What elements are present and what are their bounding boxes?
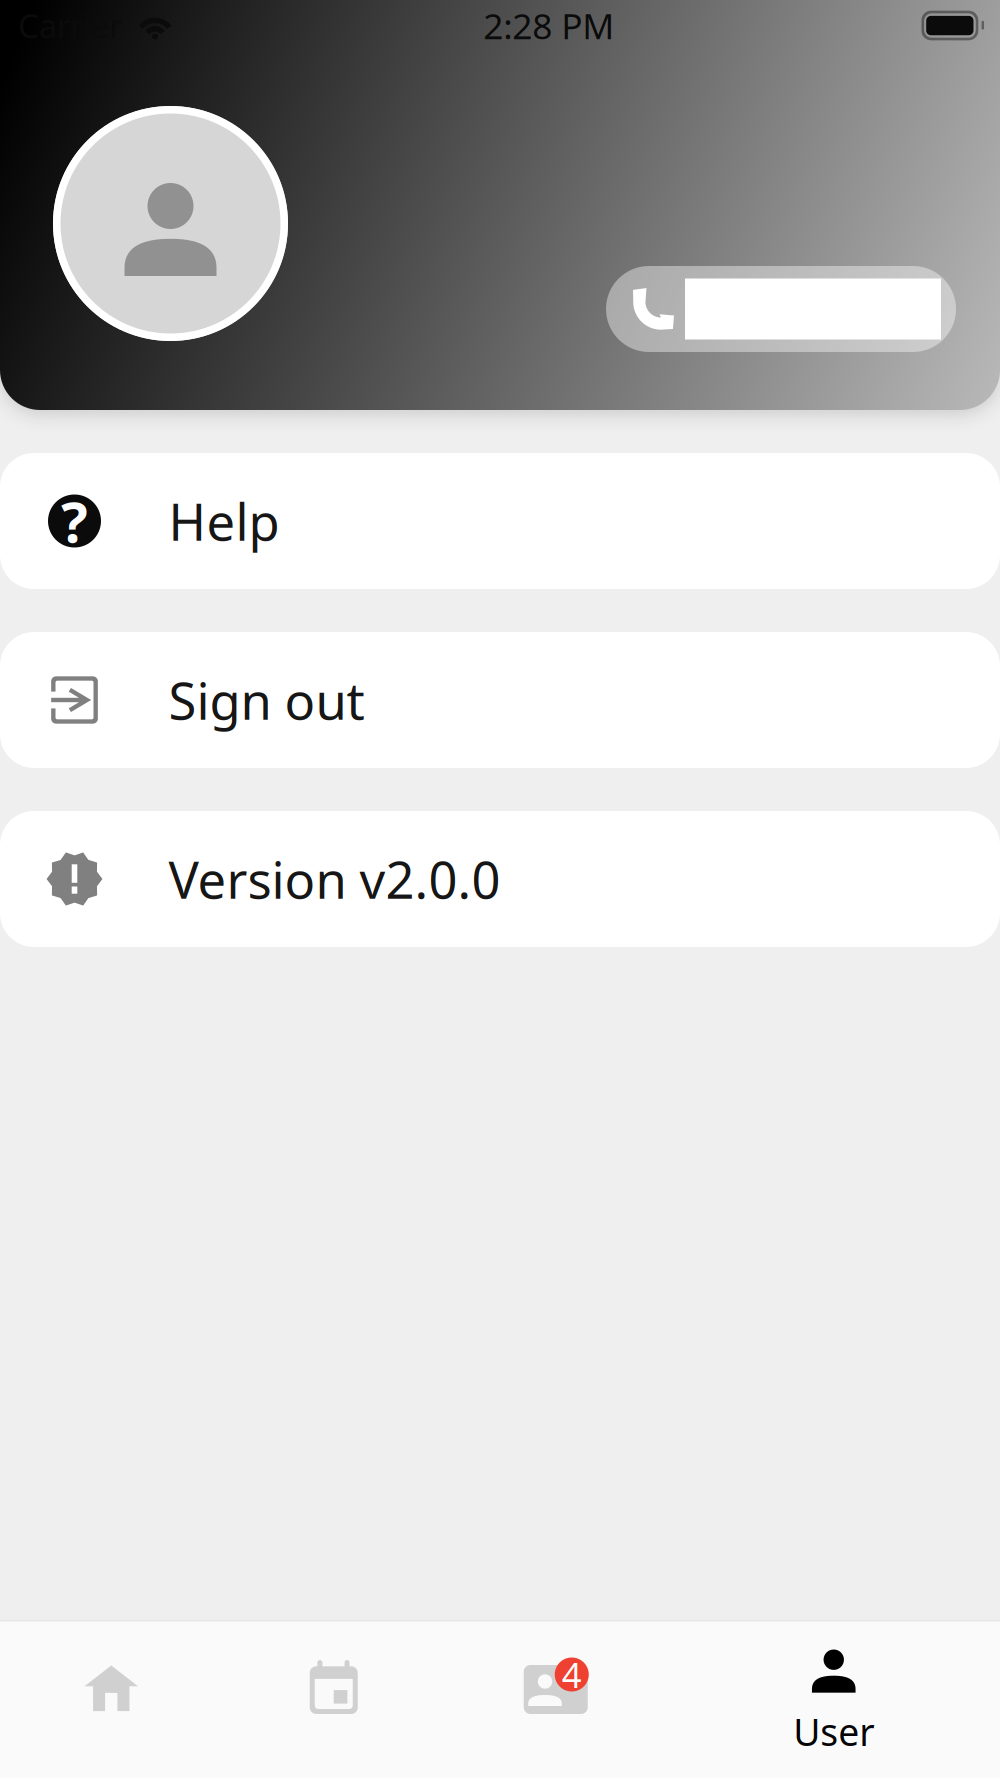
staticText: Help bbox=[168, 486, 279, 555]
button[interactable]: Calendar bbox=[222, 1621, 445, 1778]
button[interactable]: Version v2.0.0 bbox=[0, 811, 1000, 947]
staticText: 2:28 PM bbox=[483, 1, 614, 49]
staticText: ? bbox=[61, 483, 88, 559]
staticText: 4 bbox=[562, 1651, 582, 1698]
button[interactable]: User bbox=[667, 1621, 1000, 1778]
button[interactable]: Home bbox=[0, 1621, 222, 1778]
button[interactable]: ? bbox=[0, 453, 1000, 589]
staticText: User bbox=[793, 1706, 874, 1757]
button[interactable]: Contacts, 4 unread bbox=[445, 1621, 667, 1778]
staticText: Sign out bbox=[168, 665, 364, 734]
staticText: Carrier bbox=[18, 3, 122, 48]
button[interactable]: Sign out bbox=[0, 632, 1000, 768]
staticText: Version v2.0.0 bbox=[168, 844, 500, 913]
